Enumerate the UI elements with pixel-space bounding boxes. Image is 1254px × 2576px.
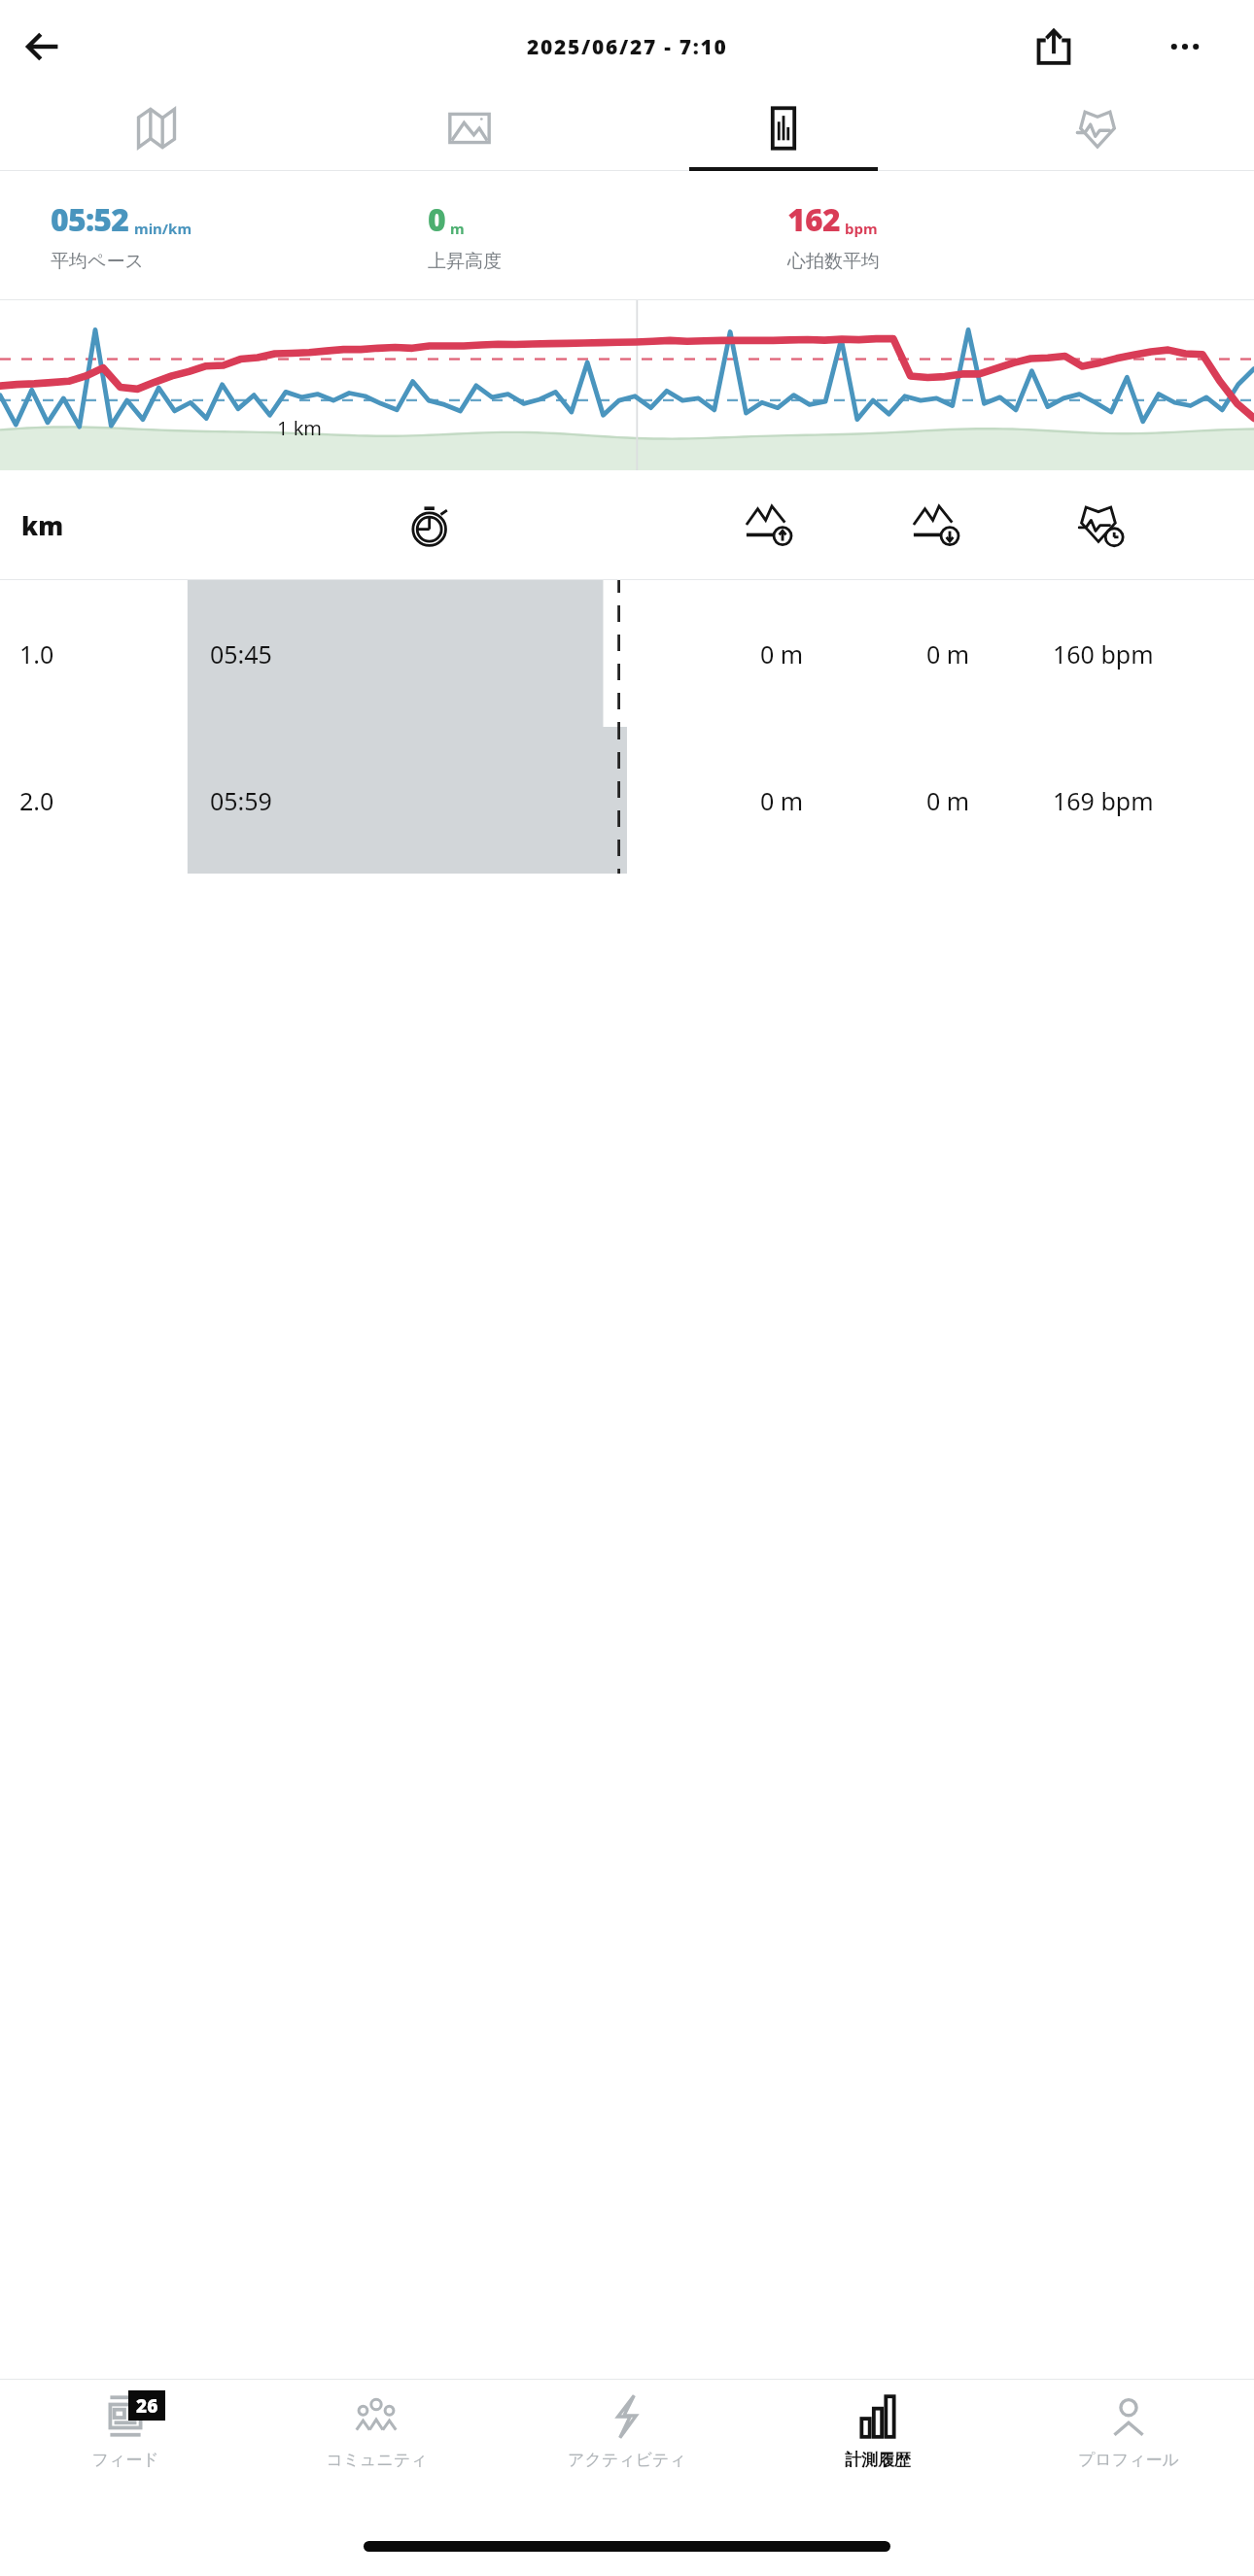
button[interactable]: 2.0 [0, 727, 1254, 874]
staticText: km [21, 508, 64, 542]
staticText: 169 bpm [1053, 784, 1154, 817]
button[interactable]: Photos [313, 86, 626, 171]
staticText: 1.0 [19, 637, 54, 670]
button[interactable]: Share [1024, 17, 1084, 77]
button[interactable]: 1.0 [0, 580, 1254, 727]
staticText: 計測履歴 [845, 2450, 911, 2470]
staticText: 05:45 [210, 637, 272, 670]
button[interactable]: 計測履歴 [752, 2380, 1003, 2516]
staticText: 0 m [926, 784, 970, 817]
staticText: 2.0 [19, 784, 54, 817]
staticText: アクティビティ [568, 2450, 686, 2470]
staticText: 160 bpm [1053, 637, 1154, 670]
staticText: コミュニティ [326, 2450, 428, 2470]
staticText: 0 m [760, 784, 804, 817]
button[interactable]: Back [14, 17, 74, 77]
button[interactable]: Charts [626, 86, 940, 171]
staticText: 162 [787, 198, 840, 241]
staticText: m [450, 219, 465, 238]
button[interactable]: Map [0, 86, 313, 171]
staticText: 上昇高度 [428, 250, 502, 273]
button[interactable]: コミュニティ [251, 2380, 502, 2516]
staticText: bpm [845, 219, 878, 238]
staticText: プロフィール [1078, 2450, 1179, 2470]
staticText: 0 m [926, 637, 970, 670]
staticText: min/km [134, 219, 192, 238]
staticText: 心拍数平均 [787, 250, 880, 273]
button[interactable]: Heart rate [940, 86, 1254, 171]
button[interactable]: プロフィール [1003, 2380, 1254, 2516]
staticText: 0 m [760, 637, 804, 670]
staticText: 2025/06/27 - 7:10 [527, 33, 728, 61]
button[interactable]: 26 [0, 2380, 251, 2516]
staticText: 平均ペース [51, 250, 144, 273]
staticText: 26 [136, 2393, 158, 2419]
staticText: 05:52 [51, 198, 129, 241]
staticText: 05:59 [210, 784, 272, 817]
staticText: フィード [91, 2450, 159, 2470]
staticText: 1 km [277, 415, 323, 441]
staticText: 0 [428, 198, 445, 241]
button[interactable]: アクティビティ [502, 2380, 752, 2516]
button[interactable]: More options [1155, 17, 1215, 77]
